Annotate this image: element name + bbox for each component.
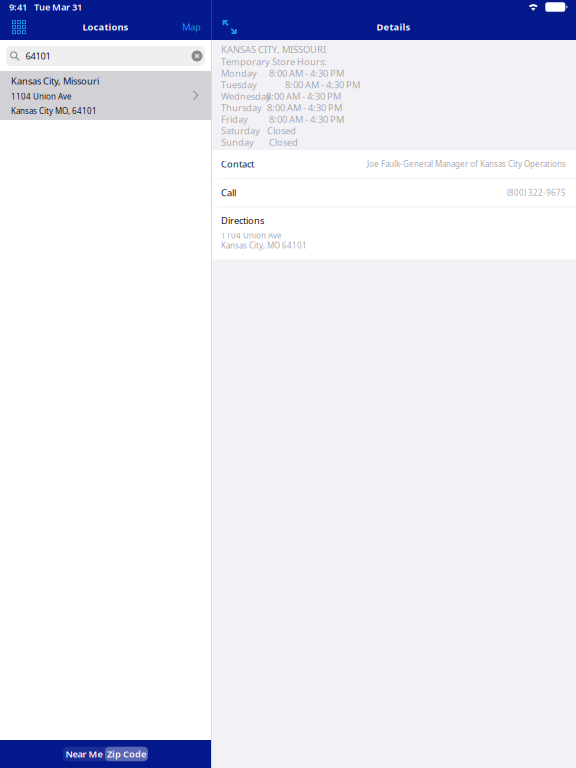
button[interactable]: Directions (211, 207, 576, 259)
staticText: Locations (82, 21, 128, 33)
staticText: Kansas City, MO 64101 (221, 240, 307, 251)
staticText: Zip Code (107, 748, 146, 760)
staticText: KANSAS CITY, MISSOURI (221, 43, 326, 56)
button[interactable]: Map (178, 14, 205, 40)
staticText: Details (376, 21, 410, 33)
staticText: Contact (221, 158, 254, 170)
staticText: Map (182, 21, 201, 33)
staticText: Kansas City, Missouri (11, 75, 99, 87)
button[interactable]: Expand (217, 14, 242, 40)
staticText: 9:41 (9, 1, 27, 13)
staticText: Call (221, 186, 236, 199)
staticText: Kansas City MO, 64101 (11, 106, 97, 116)
staticText: Closed (267, 125, 296, 137)
staticText: Closed (269, 136, 298, 148)
button[interactable]: Contact (211, 150, 576, 178)
staticText: 8:00 AM - 4:30 PM (269, 113, 344, 125)
staticText: Thursday (221, 102, 262, 114)
staticText: Tuesday (221, 79, 257, 91)
staticText: 64101 (25, 50, 50, 62)
staticText: Temporary Store Hours: (221, 56, 327, 68)
staticText: Wednesday (221, 90, 271, 102)
staticText: Friday (221, 113, 248, 125)
button[interactable]: Kansas City, Missouri (0, 71, 211, 120)
button[interactable]: All locations (7, 14, 31, 40)
staticText: Near Me (65, 748, 102, 760)
staticText: 8:00 AM - 4:30 PM (285, 79, 360, 91)
staticText: Joe Faulk-General Manager of Kansas City… (367, 159, 566, 169)
staticText: 1104 Union Ave (11, 91, 72, 102)
staticText: Saturday (221, 125, 260, 137)
button[interactable]: Near Me (63, 747, 105, 761)
staticText: 8:00 AM - 4:30 PM (267, 102, 342, 114)
button[interactable]: 64101 (6, 46, 205, 66)
staticText: 8:00 AM - 4:30 PM (266, 90, 341, 102)
staticText: (800) 322-9675 (507, 187, 566, 198)
button[interactable]: Zip Code (105, 747, 148, 761)
staticText: Sunday (221, 136, 254, 148)
button[interactable]: Call (211, 179, 576, 207)
staticText: Tue Mar 31 (34, 1, 82, 13)
staticText: Monday (221, 67, 257, 79)
staticText: 1104 Union Ave (221, 230, 282, 241)
staticText: Directions (221, 214, 264, 227)
staticText: 8:00 AM - 4:30 PM (269, 67, 344, 79)
